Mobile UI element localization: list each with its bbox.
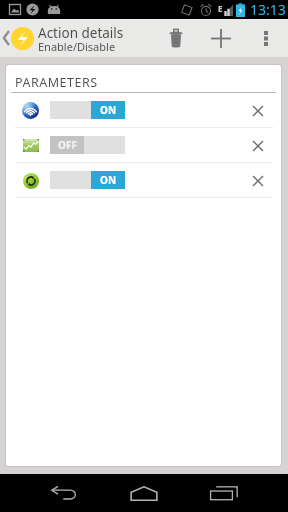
button[interactable]: Navigate up — [0, 19, 34, 57]
button[interactable]: Remove parameter — [241, 129, 274, 162]
button[interactable]: Add — [198, 19, 244, 57]
staticText: PARAMETERS — [15, 74, 98, 91]
button[interactable]: Remove parameter — [241, 94, 274, 127]
button[interactable]: Recent apps — [184, 474, 264, 512]
button[interactable]: OFF — [50, 136, 125, 154]
button[interactable]: Remove parameter — [241, 164, 274, 197]
staticText: E — [218, 3, 223, 14]
button[interactable]: ON — [50, 101, 125, 119]
button[interactable]: Delete — [154, 19, 198, 57]
button[interactable]: Home — [104, 474, 184, 512]
staticText: ON — [100, 173, 117, 187]
button[interactable]: OFF — [6, 128, 281, 162]
staticText: Enable/Disable — [38, 39, 116, 54]
button[interactable]: ON — [50, 171, 125, 189]
button[interactable]: More options — [244, 19, 288, 57]
button[interactable]: ON — [6, 163, 281, 197]
staticText: ON — [100, 103, 117, 117]
staticText: OFF — [58, 138, 77, 152]
button[interactable]: ON — [6, 93, 281, 127]
button[interactable]: Back — [24, 474, 104, 512]
staticText: Action details — [38, 24, 124, 42]
staticText: 13:13 — [250, 0, 286, 19]
